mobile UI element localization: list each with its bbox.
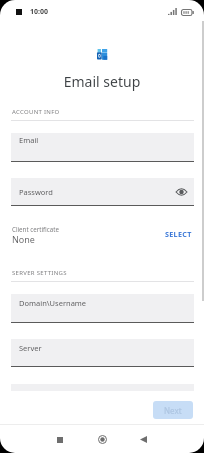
- button[interactable]: Back: [126, 426, 160, 453]
- staticText: ACCOUNT INFO: [12, 108, 60, 116]
- button[interactable]: Domain\Username: [11, 294, 194, 322]
- staticText: Email setup: [0, 72, 204, 91]
- button[interactable]: Recent apps: [43, 426, 77, 453]
- staticText: Password: [19, 187, 53, 197]
- staticText: Client certificate: [12, 225, 59, 233]
- button[interactable]: Password: [11, 178, 194, 206]
- staticText: 10:00: [30, 7, 48, 17]
- button[interactable]: Home: [85, 426, 119, 453]
- button[interactable]: Show password: [173, 184, 189, 200]
- staticText: Next: [164, 405, 182, 416]
- staticText: SELECT: [165, 229, 192, 239]
- staticText: Domain\Username: [19, 298, 87, 308]
- staticText: None: [12, 233, 35, 245]
- button[interactable]: Email: [11, 133, 194, 161]
- staticText: Email: [19, 135, 39, 145]
- staticText: Server: [19, 343, 42, 353]
- button[interactable]: SELECT: [163, 227, 194, 241]
- staticText: SERVER SETTINGS: [12, 269, 67, 277]
- button[interactable]: Next: [153, 401, 193, 419]
- button[interactable]: Server: [11, 339, 194, 367]
- button[interactable]: [0, 218, 204, 248]
